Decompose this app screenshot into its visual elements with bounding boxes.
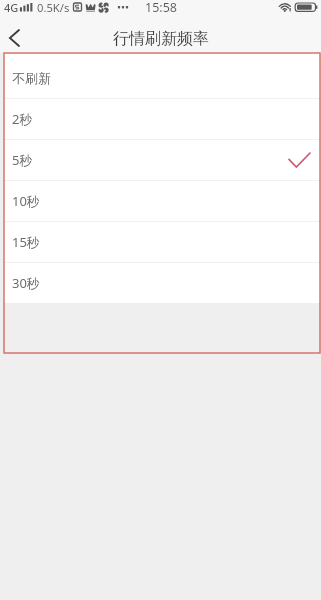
staticText: 15秒 [12,233,40,251]
staticText: 不刷新 [12,70,51,86]
staticText: 10秒 [12,192,40,210]
button[interactable]: 15秒 [4,222,320,262]
staticText: 0.5K/s [37,0,70,15]
button[interactable]: Back [0,19,31,53]
button[interactable]: 2秒 [4,99,320,139]
staticText: 2秒 [12,110,33,128]
button[interactable]: 10秒 [4,181,320,221]
staticText: 4G [4,0,19,15]
staticText: 行情刷新频率 [113,29,209,49]
staticText: 30秒 [12,274,40,292]
button[interactable]: 5秒 [4,140,320,180]
button[interactable]: 30秒 [4,263,320,303]
button[interactable]: 不刷新 [4,53,320,98]
staticText: 5秒 [12,151,33,169]
staticText: 15:58 [145,0,177,16]
